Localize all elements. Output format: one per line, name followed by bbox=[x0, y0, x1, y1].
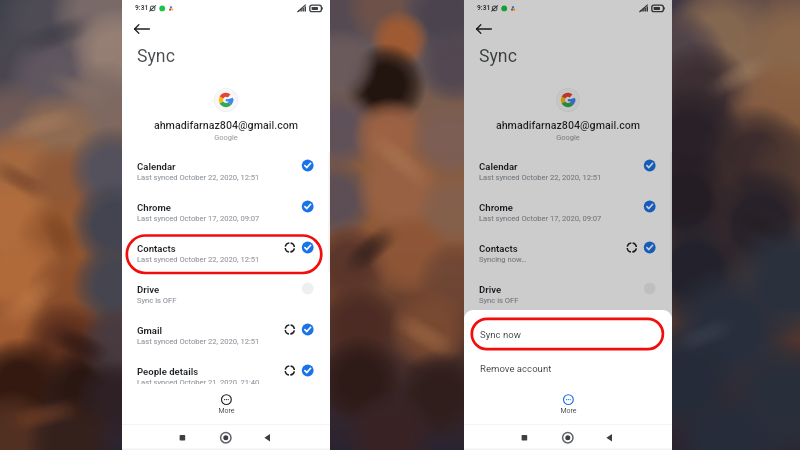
staticText: Calendar bbox=[137, 161, 176, 172]
button[interactable]: Drive bbox=[464, 275, 672, 316]
staticText: Last synced October 17, 2020, 09:07 bbox=[479, 214, 602, 223]
staticText: Contacts bbox=[479, 243, 518, 254]
staticText: Last synced October 22, 2020, 12:51 bbox=[479, 173, 602, 182]
staticText: ahmadifarnaz804@gmail.com bbox=[122, 119, 330, 132]
staticText: Last synced October 22, 2020, 12:51 bbox=[137, 173, 260, 182]
staticText: Last synced October 22, 2020, 12:51 bbox=[137, 337, 260, 346]
staticText: Contacts bbox=[137, 243, 176, 254]
staticText: Last synced October 17, 2020, 09:07 bbox=[137, 214, 260, 223]
button[interactable]: Chrome bbox=[122, 193, 330, 234]
staticText: Last synced October 22, 2020, 12:51 bbox=[479, 337, 602, 346]
staticText: ahmadifarnaz804@gmail.com bbox=[464, 119, 672, 132]
staticText: More bbox=[210, 407, 243, 415]
staticText: People details bbox=[137, 366, 199, 377]
button[interactable]: Back bbox=[131, 18, 153, 40]
button[interactable]: Contacts bbox=[122, 234, 330, 275]
staticText: Chrome bbox=[137, 202, 171, 213]
staticText: Sync is OFF bbox=[137, 296, 177, 305]
button[interactable]: More bbox=[210, 392, 243, 425]
button[interactable]: People details bbox=[464, 357, 672, 384]
staticText: Calendar bbox=[479, 161, 518, 172]
staticText: Remove account bbox=[480, 363, 552, 374]
button[interactable]: Gmail bbox=[464, 316, 672, 357]
button[interactable]: Contacts bbox=[464, 234, 672, 275]
staticText: Last synced October 22, 2020, 12:51 bbox=[137, 255, 260, 264]
staticText: People details bbox=[479, 366, 541, 377]
staticText: Google bbox=[464, 133, 672, 142]
staticText: Last synced October 21, 2020, 21:40 bbox=[137, 378, 260, 384]
button[interactable]: Remove account bbox=[464, 356, 672, 390]
staticText: 9:31 bbox=[477, 4, 491, 12]
button[interactable]: People details bbox=[122, 357, 330, 384]
staticText: 9:31 bbox=[135, 4, 149, 12]
staticText: More bbox=[552, 407, 585, 415]
staticText: Gmail bbox=[137, 325, 163, 336]
button[interactable]: Calendar bbox=[464, 152, 672, 193]
staticText: Gmail bbox=[479, 325, 505, 336]
button[interactable]: More bbox=[552, 392, 585, 425]
button[interactable]: Calendar bbox=[122, 152, 330, 193]
button[interactable]: Gmail bbox=[122, 316, 330, 357]
button[interactable]: Chrome bbox=[464, 193, 672, 234]
staticText: Drive bbox=[479, 284, 502, 295]
staticText: Sync bbox=[137, 46, 175, 67]
staticText: Sync bbox=[479, 46, 517, 67]
staticText: Chrome bbox=[479, 202, 513, 213]
staticText: Sync is OFF bbox=[479, 296, 519, 305]
staticText: Google bbox=[122, 133, 330, 142]
staticText: Sync now bbox=[480, 329, 521, 340]
staticText: Drive bbox=[137, 284, 160, 295]
button[interactable]: Drive bbox=[122, 275, 330, 316]
button[interactable]: Sync now bbox=[464, 320, 672, 356]
staticText: Syncing now… bbox=[479, 255, 527, 264]
button[interactable]: Back bbox=[473, 18, 495, 40]
